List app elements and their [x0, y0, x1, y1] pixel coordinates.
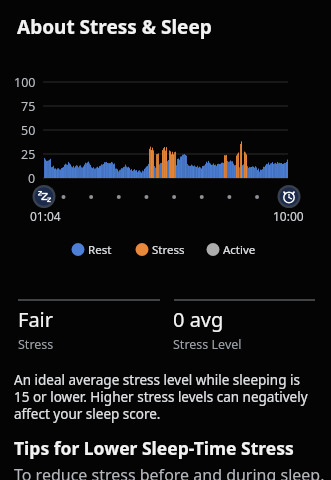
staticText: Stress: [152, 242, 185, 258]
staticText: 01:04: [30, 208, 61, 224]
staticText: 75: [21, 98, 36, 115]
staticText: Tips for Lower Sleep-Time Stress: [14, 436, 294, 460]
staticText: 0: [28, 170, 36, 187]
staticText: 10:00: [273, 208, 304, 224]
staticText: 25: [21, 146, 36, 163]
staticText: To reduce stress before and during sleep…: [14, 464, 325, 480]
staticText: 50: [21, 122, 36, 139]
staticText: Active: [223, 242, 256, 258]
staticText: Fair: [18, 306, 54, 333]
staticText: Rest: [88, 242, 112, 258]
button[interactable]: [32, 185, 56, 209]
staticText: An ideal average stress level while slee…: [14, 371, 308, 423]
staticText: 0 avg: [173, 306, 224, 333]
button[interactable]: [277, 185, 301, 209]
staticText: About Stress & Sleep: [17, 14, 212, 40]
staticText: Stress: [18, 336, 54, 353]
staticText: Stress Level: [173, 336, 242, 353]
staticText: 100: [14, 74, 36, 91]
